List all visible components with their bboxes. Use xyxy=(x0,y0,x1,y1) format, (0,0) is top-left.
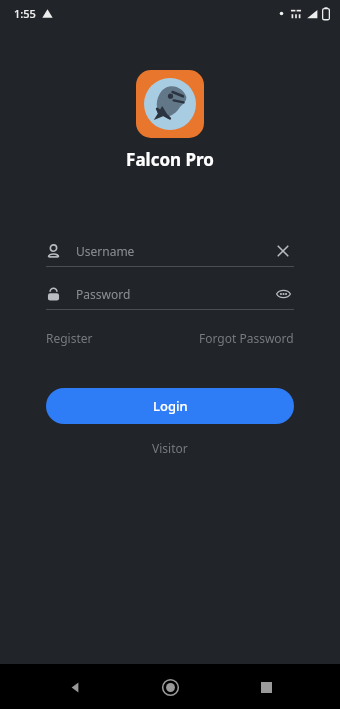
button[interactable]: Back xyxy=(52,665,96,709)
staticText: Username xyxy=(76,243,135,259)
button[interactable]: Recent apps xyxy=(244,665,288,709)
staticText: Login xyxy=(153,397,188,415)
button[interactable]: Clear username xyxy=(272,240,294,262)
staticText: Register xyxy=(46,330,93,346)
staticText: Falcon Pro xyxy=(126,148,214,171)
staticText: Forgot Password xyxy=(199,330,294,346)
button[interactable]: Visitor xyxy=(138,434,202,462)
button[interactable]: Login xyxy=(46,388,294,424)
staticText: Password xyxy=(76,286,131,302)
button[interactable]: Register xyxy=(46,326,93,350)
button[interactable]: Show password xyxy=(272,283,294,305)
button[interactable]: Password xyxy=(46,279,294,309)
button[interactable]: Username xyxy=(46,236,294,266)
staticText: 1:55 xyxy=(14,6,36,21)
staticText: Visitor xyxy=(152,440,188,456)
button[interactable]: Forgot Password xyxy=(199,326,294,350)
button[interactable]: Home xyxy=(148,665,192,709)
